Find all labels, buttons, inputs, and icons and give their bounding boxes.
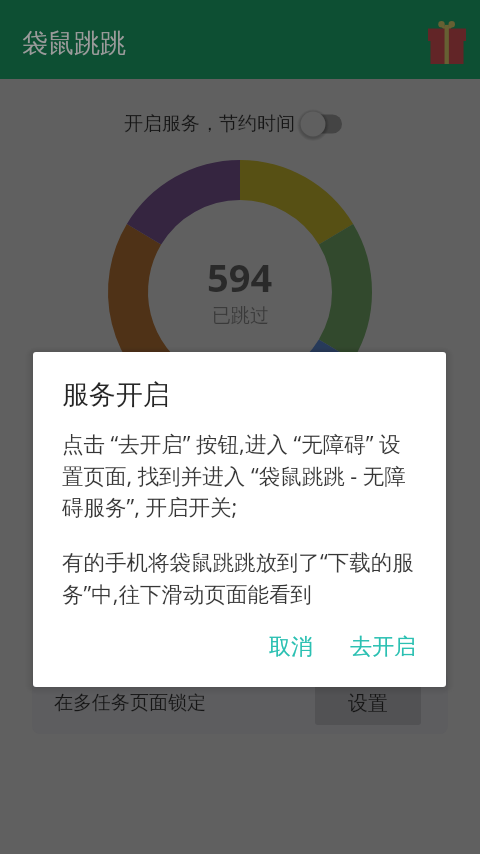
staticText: 取消 [269,633,313,661]
staticText: 袋鼠跳跳 [22,27,126,60]
button[interactable]: 取消 [260,627,322,667]
staticText: 服务开启 [62,378,170,412]
staticText: 在多任务页面锁定 [54,691,206,715]
button[interactable]: Toggle service [302,104,352,144]
button[interactable]: Gift [428,21,466,64]
button[interactable]: 设置 [315,681,421,725]
staticText: 有的手机将袋鼠跳跳放到了“下载的服务”中,往下滑动页面能看到 [62,547,416,608]
staticText: 开启服务，节约时间 [124,112,295,136]
staticText: 设置 [348,691,388,716]
staticText: 去开启 [350,633,416,661]
staticText: 594 [207,251,273,303]
staticText: 已跳过 [212,304,269,328]
button[interactable]: 去开启 [341,627,425,667]
staticText: 点击 “去开启” 按钮,进入 “无障碍” 设置页面, 找到并进入 “袋鼠跳跳 -… [62,429,416,521]
